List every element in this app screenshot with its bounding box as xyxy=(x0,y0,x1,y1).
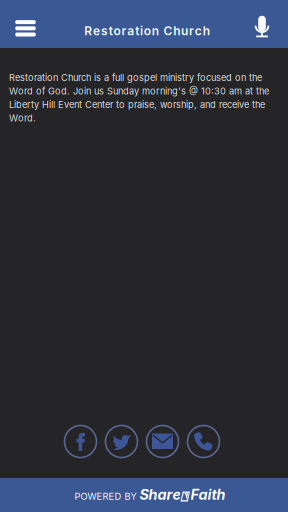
button[interactable]: Menu xyxy=(5,8,46,49)
button[interactable]: Phone xyxy=(183,421,224,462)
staticText xyxy=(136,489,139,500)
button[interactable]: Email xyxy=(142,421,183,462)
button[interactable]: Voice search xyxy=(240,4,284,48)
staticText: Share xyxy=(139,486,180,503)
staticText: Restoration Church is a full gospel mini… xyxy=(9,72,269,124)
staticText: Faith xyxy=(191,486,226,503)
button[interactable]: Facebook xyxy=(60,421,101,462)
staticText: POWERED BY xyxy=(74,491,136,502)
button[interactable]: Twitter xyxy=(101,421,142,462)
staticText: Restoration Church xyxy=(84,24,210,38)
